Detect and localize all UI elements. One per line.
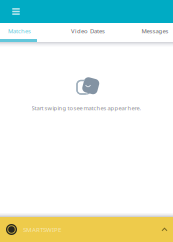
button[interactable]: Messages bbox=[137, 23, 173, 39]
button[interactable]: Menu bbox=[6, 0, 26, 22]
button[interactable]: SMARTSWIPE bbox=[0, 217, 173, 242]
button[interactable]: Video Dates bbox=[39, 23, 137, 39]
staticText: Start swiping to see matches appear here… bbox=[31, 104, 141, 112]
staticText: Matches bbox=[8, 27, 31, 35]
staticText: Messages bbox=[141, 27, 168, 35]
button[interactable]: Matches bbox=[0, 23, 39, 39]
staticText: SMARTSWIPE bbox=[23, 225, 61, 234]
staticText: Video Dates bbox=[71, 27, 105, 35]
